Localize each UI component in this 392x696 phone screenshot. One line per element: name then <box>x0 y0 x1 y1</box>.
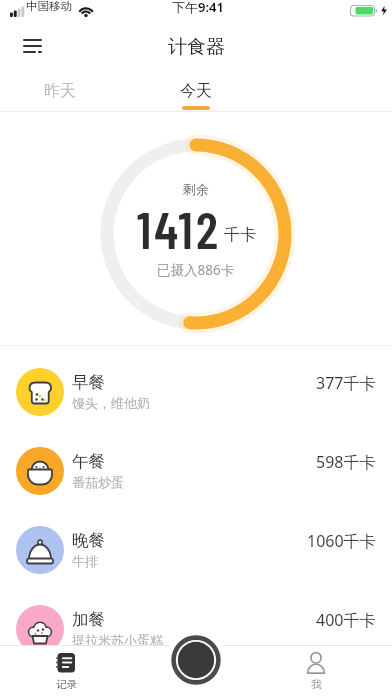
staticText: 377千卡 <box>316 372 376 394</box>
staticText: 晚餐 <box>72 530 105 551</box>
button[interactable]: 记录 <box>35 646 96 696</box>
staticText: 我 <box>311 678 322 691</box>
staticText: 加餐 <box>72 609 105 630</box>
button[interactable]: 加餐 <box>0 589 392 668</box>
button[interactable]: 晚餐 <box>0 510 392 589</box>
staticText: 已摄入886卡 <box>157 261 235 279</box>
staticText: 1060千卡 <box>307 530 376 552</box>
staticText: 记录 <box>56 678 77 691</box>
staticText: 598千卡 <box>316 451 376 473</box>
staticText: 剩余 <box>183 181 209 197</box>
staticText: 中国移动 <box>26 0 72 13</box>
staticText: 1412 <box>137 197 222 251</box>
staticText: 番茄炒蛋 <box>72 474 124 490</box>
staticText: 牛排 <box>72 553 98 569</box>
button[interactable]: 我 <box>285 646 346 696</box>
staticText: 提拉米苏小蛋糕 <box>72 632 163 648</box>
staticText: 馒头，维他奶 <box>72 395 150 411</box>
button[interactable] <box>164 628 228 692</box>
staticText: 400千卡 <box>316 609 376 631</box>
staticText: 计食器 <box>168 35 225 59</box>
button[interactable] <box>15 28 51 64</box>
staticText: 千卡 <box>224 225 256 245</box>
button[interactable]: 午餐 <box>0 431 392 510</box>
button[interactable]: 早餐 <box>0 352 392 431</box>
staticText: 早餐 <box>72 372 105 393</box>
staticText: 下午9:41 <box>172 0 224 16</box>
button[interactable]: 昨天 <box>20 74 100 108</box>
staticText: 午餐 <box>72 451 105 472</box>
staticText: 昨天 <box>44 81 76 101</box>
button[interactable]: 今天 <box>156 74 236 108</box>
staticText: 今天 <box>180 81 212 101</box>
